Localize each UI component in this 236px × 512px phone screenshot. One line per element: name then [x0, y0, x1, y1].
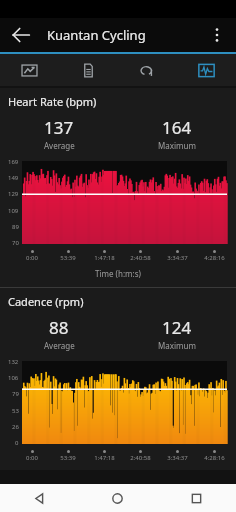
staticText: 124 [162, 316, 192, 339]
staticText: Time (h:m:s) [0, 268, 236, 279]
button[interactable]: Laps [118, 54, 177, 86]
staticText: 4:28:16 [204, 454, 225, 462]
staticText: 53 [12, 407, 19, 415]
staticText: 26 [12, 423, 19, 431]
staticText: Maximum [158, 140, 196, 151]
staticText: Average [44, 140, 75, 151]
staticText: 129 [8, 190, 19, 198]
staticText: 0 [15, 439, 19, 447]
staticText: 89 [12, 223, 19, 231]
staticText: 3:34:37 [167, 254, 188, 262]
staticText: 70 [12, 239, 19, 247]
staticText: 2:40:58 [130, 454, 151, 462]
staticText: 132 [8, 358, 19, 366]
staticText: 3:34:37 [167, 454, 188, 462]
staticText: 137 [44, 116, 74, 139]
staticText: 106 [8, 374, 19, 382]
button[interactable]: Charts [177, 54, 236, 86]
staticText: Kuantan Cycling [47, 26, 146, 44]
button[interactable]: Details [59, 54, 118, 86]
staticText: Maximum [158, 340, 196, 351]
staticText: 4:28:16 [204, 254, 225, 262]
staticText: 88 [49, 316, 69, 339]
staticText: 164 [162, 116, 192, 139]
staticText: Cadence (rpm) [8, 294, 84, 309]
button[interactable]: Map [0, 54, 59, 86]
staticText: Heart Rate (bpm) [8, 94, 97, 109]
button[interactable]: Back [0, 484, 78, 512]
staticText: 1:47:18 [94, 254, 115, 262]
staticText: 2:40:58 [130, 254, 151, 262]
staticText: 1:47:18 [94, 454, 115, 462]
button[interactable]: Recent apps [157, 484, 236, 512]
staticText: 109 [8, 207, 19, 215]
staticText: 0:00 [26, 254, 38, 262]
staticText: 79 [12, 390, 19, 398]
button[interactable]: More options [204, 22, 230, 48]
staticText: Average [44, 340, 75, 351]
button[interactable]: Home [78, 484, 157, 512]
staticText: 53:39 [60, 254, 76, 262]
button[interactable]: Back [8, 22, 34, 48]
staticText: 0:00 [26, 454, 38, 462]
staticText: 149 [8, 174, 19, 182]
staticText: 169 [8, 158, 19, 166]
staticText: 53:39 [60, 454, 76, 462]
